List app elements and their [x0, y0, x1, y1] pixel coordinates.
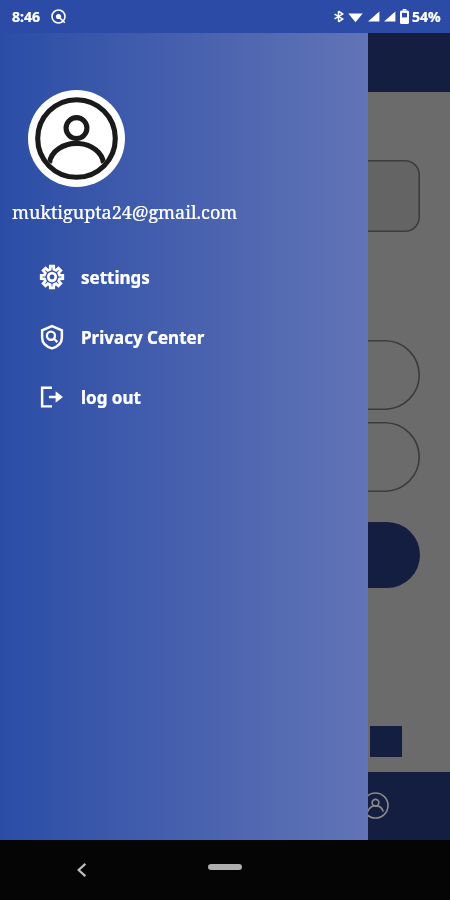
staticText: log out — [81, 386, 141, 409]
button[interactable]: Privacy Center — [0, 307, 368, 367]
button[interactable]: Back — [68, 856, 96, 884]
staticText: 54% — [412, 7, 441, 26]
button[interactable]: Home — [208, 864, 242, 870]
button[interactable] — [170, 522, 420, 588]
staticText: Fee : 100/- — [250, 114, 333, 137]
button[interactable]: Profile — [362, 792, 389, 819]
button[interactable]: Log out — [0, 367, 368, 427]
staticText: Privacy Center — [81, 326, 205, 349]
staticText: 8:46 — [12, 7, 40, 26]
button[interactable]: Settings — [0, 247, 368, 307]
button[interactable]: Account — [28, 90, 125, 187]
staticText: muktigupta24@gmail.com — [12, 200, 238, 225]
staticText: settings — [81, 266, 150, 289]
